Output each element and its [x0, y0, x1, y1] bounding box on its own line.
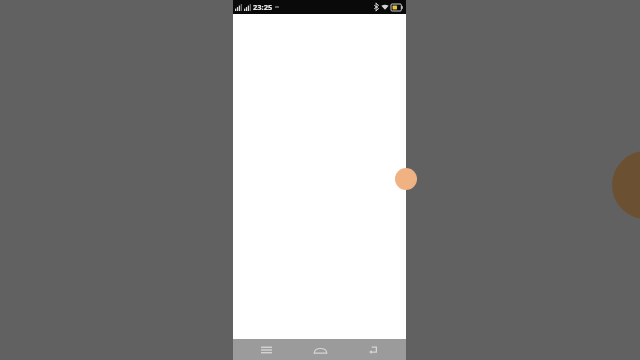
button[interactable]: Recent apps	[246, 339, 286, 360]
staticText: 23:25	[253, 2, 273, 12]
button[interactable]: Back	[353, 339, 393, 360]
button[interactable]: Home	[300, 339, 340, 360]
